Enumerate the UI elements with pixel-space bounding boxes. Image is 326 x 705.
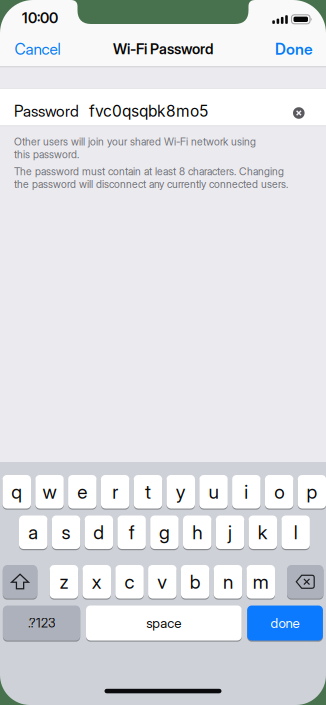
staticText: w <box>42 480 56 503</box>
staticText: .?123 <box>28 615 55 630</box>
staticText: l <box>294 521 298 544</box>
staticText: fvc0qsqbk8mo5 <box>89 102 208 120</box>
button[interactable]: s <box>52 515 80 549</box>
staticText: e <box>77 480 87 503</box>
button[interactable]: k <box>249 515 277 549</box>
staticText: d <box>93 521 104 544</box>
staticText: The password must contain at least 8 cha… <box>14 165 284 178</box>
button[interactable]: w <box>35 475 64 508</box>
staticText: v <box>157 570 167 593</box>
button[interactable]: a <box>19 515 47 549</box>
button[interactable]: q <box>2 475 31 508</box>
staticText: z <box>59 570 68 593</box>
button[interactable]: d <box>85 515 113 549</box>
staticText: Password <box>14 102 79 120</box>
button[interactable]: p <box>298 475 326 508</box>
button[interactable]: y <box>166 475 195 508</box>
button[interactable]: v <box>148 565 177 598</box>
button[interactable]: b <box>181 565 209 598</box>
button[interactable]: Delete <box>287 565 323 598</box>
staticText: h <box>192 521 202 544</box>
staticText: j <box>228 521 232 544</box>
staticText: t <box>145 480 151 503</box>
staticText: s <box>61 521 70 544</box>
staticText: m <box>253 570 269 593</box>
button[interactable]: x <box>82 565 111 598</box>
staticText: o <box>274 480 284 503</box>
button[interactable]: Password <box>0 89 326 125</box>
staticText: space <box>146 615 181 631</box>
button[interactable]: done <box>247 605 323 640</box>
staticText: u <box>208 480 218 503</box>
staticText: Cancel <box>14 40 60 58</box>
button[interactable]: u <box>199 475 228 508</box>
button[interactable]: z <box>50 565 78 598</box>
button[interactable]: r <box>101 475 129 508</box>
button[interactable]: n <box>214 565 242 598</box>
button[interactable]: j <box>216 515 244 549</box>
staticText: n <box>223 570 233 593</box>
staticText: x <box>92 570 102 593</box>
button[interactable]: m <box>246 565 275 598</box>
button[interactable]: h <box>183 515 211 549</box>
staticText: Done <box>275 40 313 58</box>
staticText: y <box>176 480 186 503</box>
button[interactable]: Done <box>253 37 313 61</box>
button[interactable]: i <box>232 475 261 508</box>
button[interactable]: c <box>115 565 144 598</box>
button[interactable]: Clear text <box>293 107 305 119</box>
staticText: Other users will join your shared Wi-Fi … <box>14 135 256 148</box>
button[interactable]: l <box>281 515 310 549</box>
staticText: g <box>159 521 170 544</box>
button[interactable]: Shift <box>3 565 37 598</box>
button[interactable]: o <box>265 475 293 508</box>
button[interactable]: Cancel <box>14 37 84 61</box>
staticText: r <box>112 480 118 503</box>
staticText: i <box>244 480 248 503</box>
button[interactable]: g <box>150 515 179 549</box>
staticText: the password will disconnect any current… <box>14 178 288 190</box>
staticText: p <box>306 480 317 503</box>
staticText: Wi-Fi Password <box>113 40 213 58</box>
button[interactable]: f <box>117 515 146 549</box>
staticText: f <box>129 521 135 544</box>
staticText: q <box>11 480 22 503</box>
staticText: b <box>190 570 201 593</box>
button[interactable]: e <box>68 475 97 508</box>
staticText: 10:00 <box>22 9 58 27</box>
button[interactable]: .?123 <box>3 605 80 640</box>
button[interactable]: t <box>134 475 162 508</box>
staticText: this password. <box>14 148 79 161</box>
button[interactable]: space <box>86 605 242 640</box>
staticText: done <box>271 615 300 631</box>
staticText: c <box>124 570 134 593</box>
staticText: a <box>28 521 38 544</box>
staticText: k <box>258 521 268 544</box>
